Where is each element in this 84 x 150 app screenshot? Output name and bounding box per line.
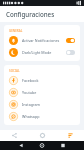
button[interactable]: Settings xyxy=(28,130,56,141)
button[interactable]: Youtube xyxy=(4,86,80,98)
button[interactable]: Activar Notificaciones xyxy=(4,34,80,46)
button[interactable]: Filter xyxy=(56,130,84,141)
button[interactable]: Toggle on xyxy=(66,38,75,43)
staticText: Instagram xyxy=(22,102,75,107)
staticText: Youtube xyxy=(22,90,75,95)
button[interactable]: Facebook xyxy=(4,74,80,86)
button[interactable]: Whatsapp xyxy=(4,110,80,122)
button[interactable]: Toggle off xyxy=(66,50,75,55)
button[interactable]: Share xyxy=(0,130,28,141)
staticText: SOCIAL xyxy=(9,69,20,73)
staticText: GENERAL xyxy=(9,29,23,33)
button[interactable]: Instagram xyxy=(4,98,80,110)
button[interactable]: Dark/Light Mode xyxy=(4,46,80,58)
staticText: Activar Notificaciones xyxy=(22,38,66,43)
staticText: Configuraciones xyxy=(6,10,55,18)
staticText: Whatsapp xyxy=(22,114,75,119)
staticText: Dark/Light Mode xyxy=(22,50,66,55)
staticText: Facebook xyxy=(22,78,75,83)
